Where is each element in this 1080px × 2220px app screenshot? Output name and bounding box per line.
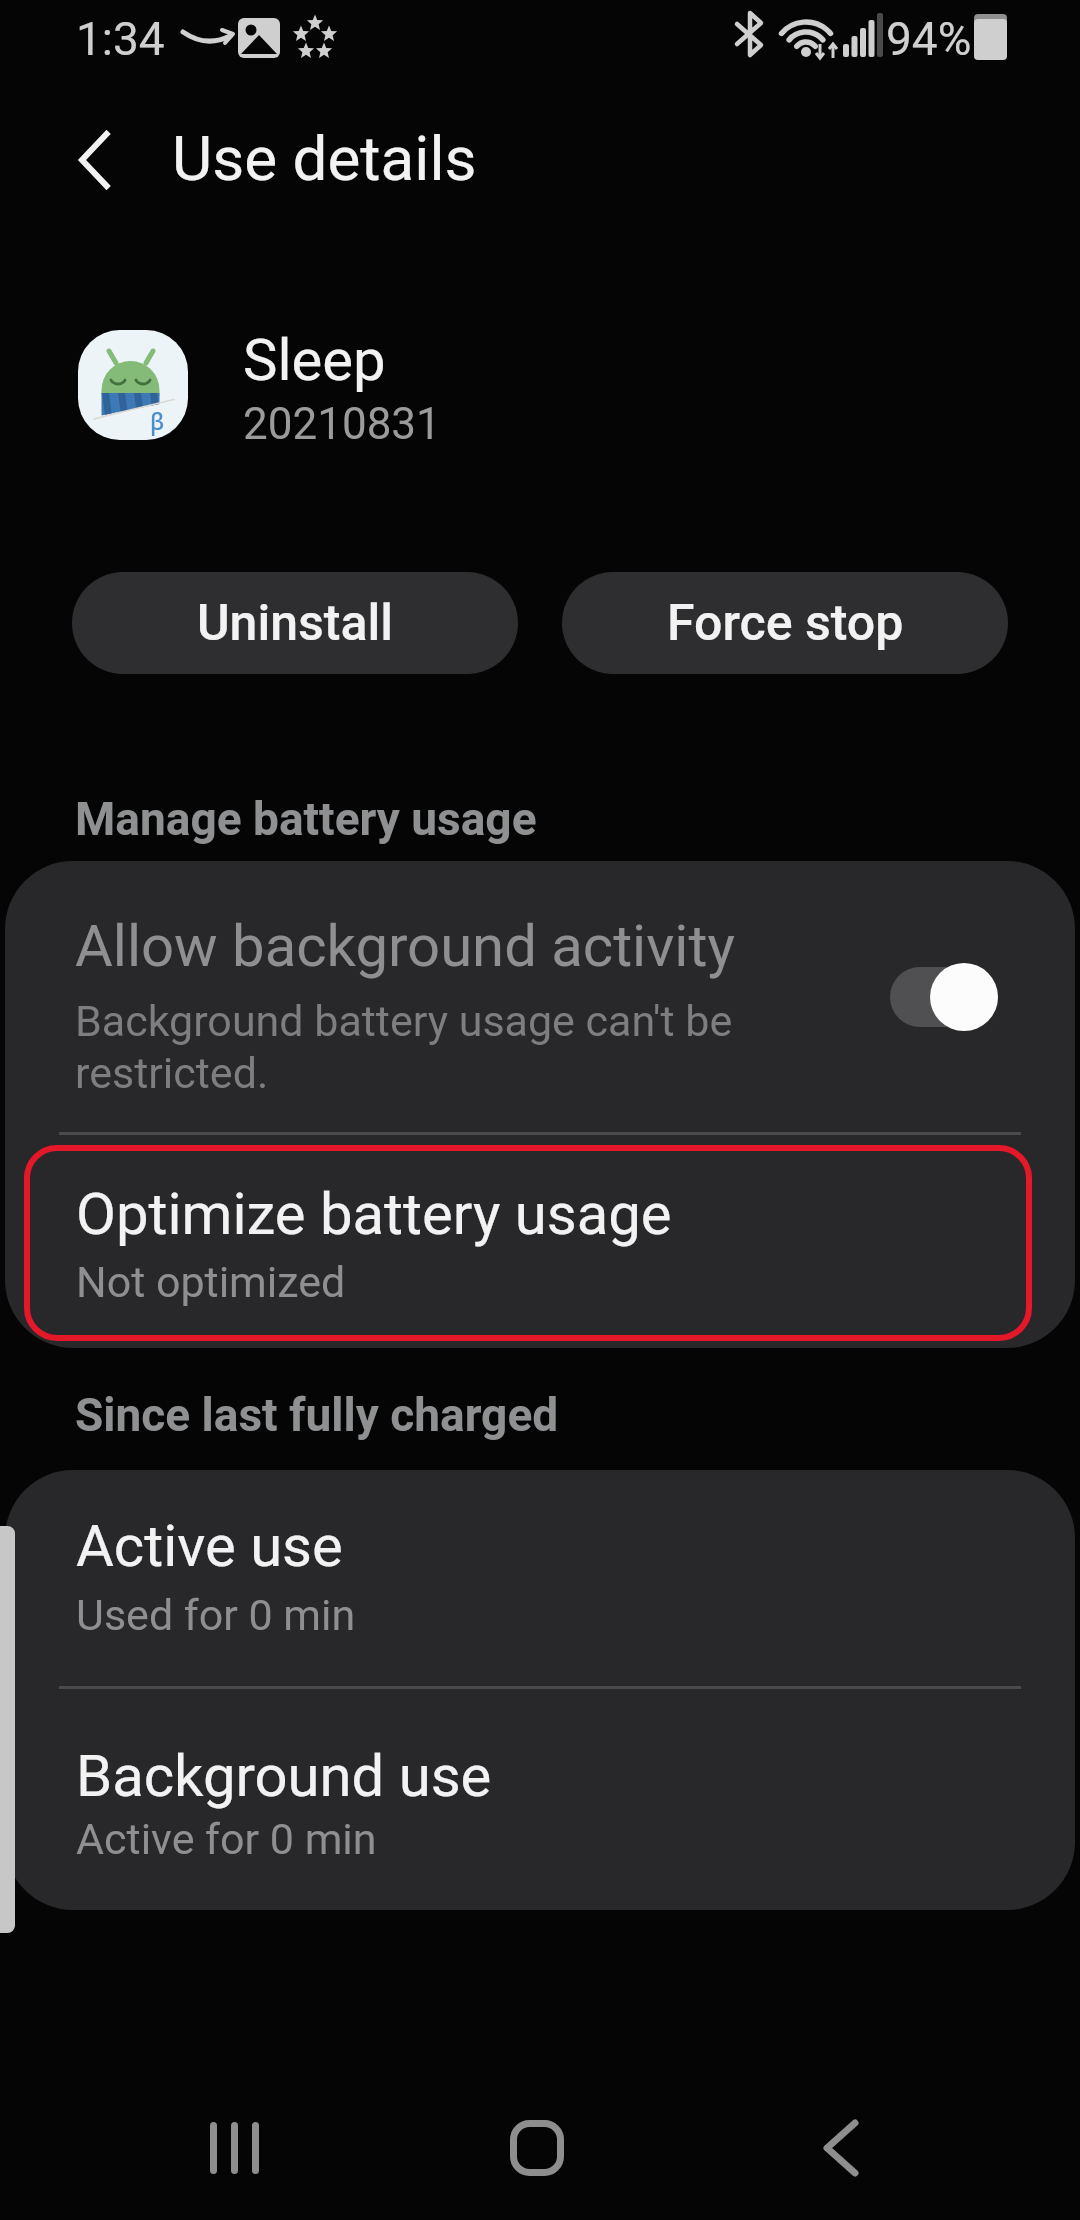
staticText: Background use: [76, 1742, 492, 1810]
button[interactable]: [54, 120, 134, 200]
staticText: 94%: [886, 12, 972, 66]
staticText: Use details: [172, 122, 477, 195]
staticText: Active use: [76, 1512, 343, 1580]
button[interactable]: [462, 2090, 612, 2205]
staticText: Uninstall: [197, 594, 394, 653]
staticText: Allow background activity: [75, 912, 735, 980]
button[interactable]: [5, 1135, 1075, 1348]
staticText: Optimize battery usage: [76, 1180, 672, 1248]
staticText: Sleep: [243, 326, 386, 394]
staticText: Force stop: [667, 594, 904, 653]
button[interactable]: [5, 861, 1075, 1133]
staticText: Since last fully charged: [75, 1388, 559, 1442]
staticText: 1:34: [76, 12, 165, 66]
staticText: β: [150, 405, 165, 436]
button[interactable]: [5, 1470, 1075, 1686]
staticText: 20210831: [243, 398, 441, 450]
button[interactable]: [5, 1689, 1075, 1910]
staticText: Background battery usage can't be: [75, 996, 733, 1046]
button[interactable]: [764, 2090, 914, 2205]
button[interactable]: Force stop: [562, 572, 1008, 674]
staticText: Manage battery usage: [75, 792, 537, 846]
staticText: Active for 0 min: [76, 1814, 377, 1864]
button[interactable]: [890, 967, 998, 1027]
staticText: Not optimized: [76, 1257, 346, 1307]
staticText: Used for 0 min: [76, 1590, 356, 1640]
staticText: restricted.: [75, 1048, 269, 1098]
button[interactable]: [160, 2090, 310, 2205]
button[interactable]: Uninstall: [72, 572, 518, 674]
